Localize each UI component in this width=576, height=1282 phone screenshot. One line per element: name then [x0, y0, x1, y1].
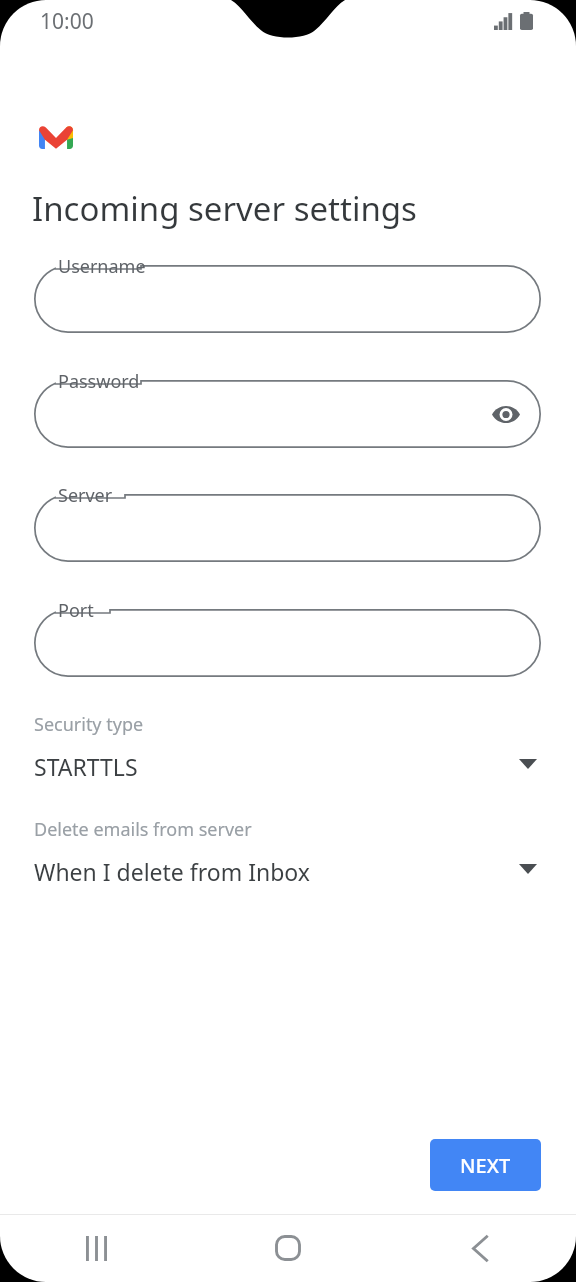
staticText: 10:00: [40, 7, 94, 36]
staticText: NEXT: [460, 1152, 511, 1179]
staticText: Incoming server settings: [32, 186, 417, 231]
staticText: Password: [58, 369, 140, 394]
button[interactable]: Show password: [484, 392, 528, 436]
button[interactable]: Delete emails from server: [34, 817, 548, 895]
button[interactable]: Port: [34, 609, 541, 677]
button[interactable]: Back: [384, 1214, 576, 1282]
staticText: Security type: [34, 712, 144, 737]
button[interactable]: Username: [34, 265, 541, 333]
staticText: Server: [58, 483, 113, 508]
button[interactable]: Password: [34, 380, 541, 448]
staticText: STARTTLS: [34, 751, 138, 782]
staticText: Delete emails from server: [34, 817, 252, 842]
button[interactable]: Server: [34, 494, 541, 562]
button[interactable]: Recent apps: [0, 1214, 192, 1282]
staticText: Username: [58, 254, 146, 279]
button[interactable]: Home: [192, 1214, 384, 1282]
button[interactable]: NEXT: [430, 1139, 541, 1191]
button[interactable]: Security type: [34, 712, 548, 790]
staticText: Port: [58, 598, 94, 623]
staticText: When I delete from Inbox: [34, 856, 310, 887]
